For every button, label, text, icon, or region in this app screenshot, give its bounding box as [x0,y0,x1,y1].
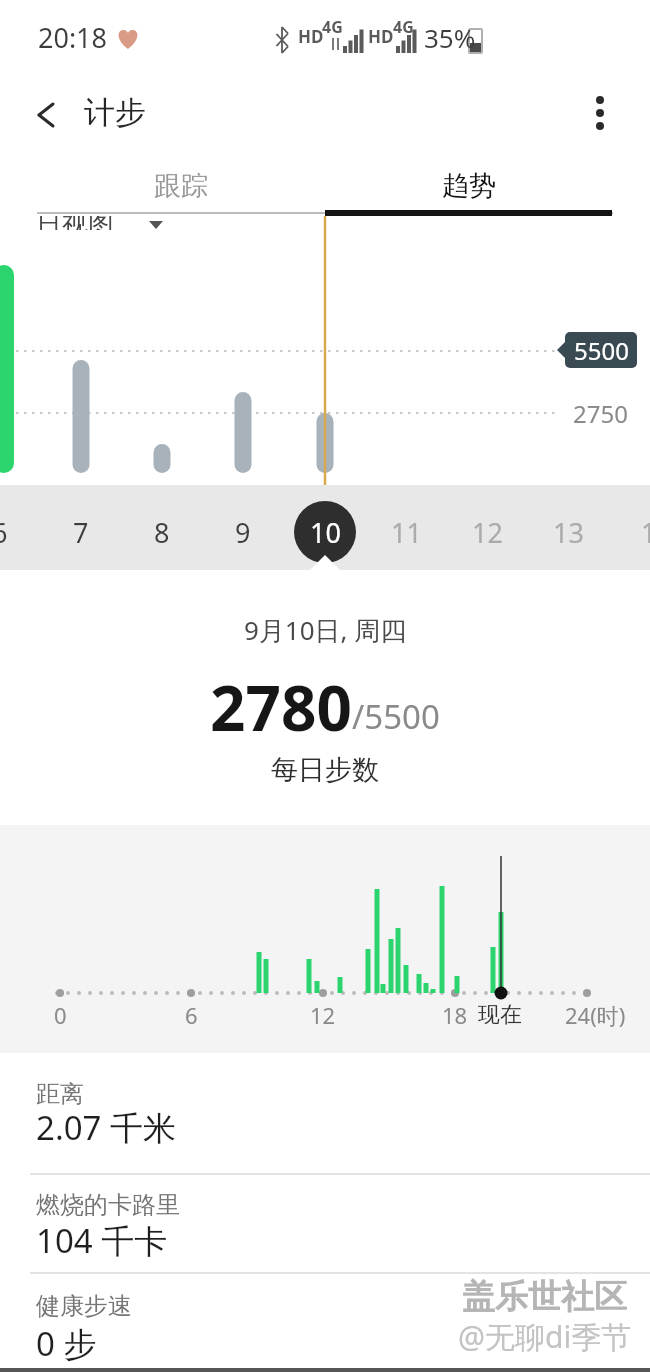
staticText: 18 [442,1000,468,1030]
button[interactable] [28,95,68,135]
button[interactable] [578,85,622,140]
staticText: 104 千卡 [36,1218,168,1263]
staticText: 6 [185,1000,198,1030]
staticText: /5500 [352,694,440,739]
staticText: 24(时) [565,1000,626,1030]
staticText: 12 [472,514,503,551]
staticText: 10 [310,514,341,551]
staticText: 13 [553,514,584,551]
staticText: 6 [0,514,8,551]
staticText: 趋势 [442,169,496,203]
staticText: 0 步 [36,1321,97,1366]
staticText: HD [368,25,394,48]
staticText: 健康步速 [36,1291,132,1321]
button[interactable]: 8 [132,485,192,570]
staticText: 燃烧的卡路里 [36,1190,180,1220]
staticText: 距离 [36,1079,84,1109]
button[interactable]: 10 [294,501,356,563]
button[interactable]: 燃烧的卡路里 [0,1175,650,1272]
staticText: 35% [424,20,476,55]
staticText: 日视图 [36,216,114,230]
staticText: 12 [310,1000,336,1030]
staticText: 20:18 [38,19,108,56]
button[interactable]: 健康步速 [0,1274,650,1372]
staticText: 9 [235,514,251,551]
staticText: 7 [73,514,89,551]
button[interactable]: 趋势 [325,150,613,216]
staticText: 每日步数 [271,753,379,787]
staticText: @无聊di季节 [458,1316,632,1357]
staticText: 1 [641,514,650,551]
button[interactable]: 1 [619,485,650,570]
button[interactable]: 11 [376,485,436,570]
staticText: HD [298,25,324,48]
staticText: 4G [322,16,343,38]
staticText: 9月10日, 周四 [244,612,407,648]
button[interactable]: 13 [538,485,598,570]
staticText: 11 [391,514,422,551]
staticText: 跟踪 [154,169,208,203]
staticText: 计步 [84,93,146,132]
button[interactable]: 6 [0,485,30,570]
staticText: 现在 [478,1001,522,1029]
button[interactable]: 7 [51,485,111,570]
staticText: 4G [393,16,414,38]
staticText: 2.07 千米 [36,1105,177,1150]
button[interactable]: 12 [457,485,517,570]
button[interactable]: 距离 [0,1053,650,1173]
button[interactable]: 跟踪 [37,150,325,216]
staticText: 8 [154,514,170,551]
staticText: 2750 [573,397,628,427]
staticText: 盖乐世社区 [462,1276,627,1318]
staticText: 5500 [574,334,629,367]
staticText: 2780 [210,665,352,745]
button[interactable]: 9 [213,485,273,570]
staticText: 0 [54,1000,67,1030]
